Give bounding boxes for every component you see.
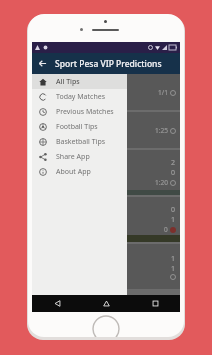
button[interactable]: 1 <box>32 244 180 289</box>
button[interactable]: Home button <box>92 315 120 337</box>
staticText: 0 <box>164 225 168 234</box>
staticText: 2 <box>171 158 176 168</box>
staticText: Share App <box>56 152 90 162</box>
button[interactable]: 0 <box>32 197 180 242</box>
staticText: 0 <box>171 168 176 178</box>
staticText: All Tips <box>56 77 80 87</box>
button[interactable]: Back <box>32 295 82 312</box>
staticText: 1:20 <box>155 178 168 187</box>
button[interactable]: All Tips <box>32 74 127 89</box>
staticText: 1 <box>171 254 176 264</box>
staticText: Sport Pesa VIP Predictions <box>55 58 162 70</box>
button[interactable]: Previous Matches <box>32 104 127 119</box>
staticText: Today Matches <box>56 92 106 102</box>
button[interactable]: 2 <box>32 150 180 195</box>
button[interactable]: About App <box>32 164 127 179</box>
button[interactable]: Football Tips <box>32 119 127 134</box>
staticText: 1 <box>171 215 176 225</box>
button[interactable]: 1:25 <box>32 112 180 148</box>
staticText: Previous Matches <box>56 107 114 117</box>
staticText: Basketball Tips <box>56 137 106 147</box>
staticText: About App <box>56 167 91 177</box>
button[interactable]: Share App <box>32 149 127 164</box>
button[interactable]: Home <box>82 295 131 312</box>
button[interactable]: Today Matches <box>32 89 127 104</box>
staticText: 1 <box>171 264 176 274</box>
button[interactable]: Back <box>32 53 52 74</box>
staticText: Football Tips <box>56 122 98 132</box>
button[interactable]: Basketball Tips <box>32 134 127 149</box>
button[interactable]: 1/1 <box>32 74 180 110</box>
staticText: 0 <box>171 205 176 215</box>
staticText: 1/1 <box>158 88 168 97</box>
staticText: 1:25 <box>155 126 168 135</box>
button[interactable]: Recents <box>131 295 180 312</box>
